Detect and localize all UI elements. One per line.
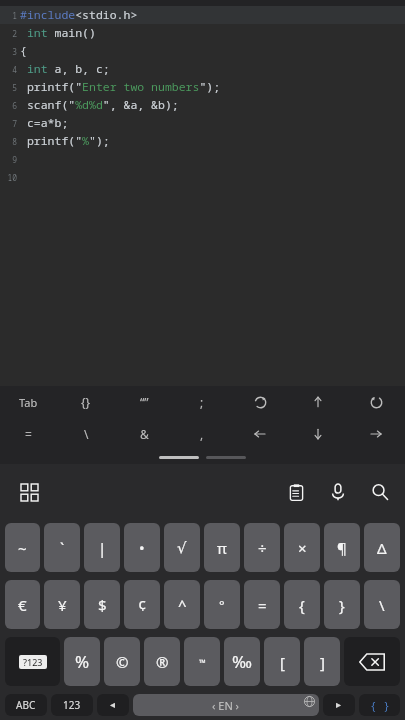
staticText: 9 bbox=[0, 154, 17, 165]
button[interactable]: Clipboard bbox=[281, 477, 311, 507]
button[interactable]: Backspace bbox=[344, 637, 400, 686]
button[interactable]: ¥ bbox=[44, 580, 80, 629]
button[interactable]: π bbox=[204, 523, 240, 572]
staticText: { } bbox=[370, 698, 390, 713]
staticText: printf("%"); bbox=[20, 133, 110, 149]
staticText: ~ bbox=[18, 538, 27, 558]
button[interactable]: = bbox=[0, 418, 57, 450]
staticText: Δ bbox=[377, 538, 387, 558]
button[interactable]: | bbox=[84, 523, 120, 572]
staticText: ▸ bbox=[336, 699, 342, 711]
staticText: , bbox=[200, 426, 204, 442]
staticText: { bbox=[299, 595, 305, 615]
button[interactable]: × bbox=[284, 523, 320, 572]
staticText: ‹ EN › bbox=[212, 698, 240, 713]
button[interactable]: € bbox=[5, 580, 40, 629]
button[interactable]: { bbox=[284, 580, 320, 629]
staticText: ` bbox=[60, 538, 65, 558]
button[interactable]: ; bbox=[173, 386, 231, 418]
staticText: scanf("%d%d", &a, &b); bbox=[20, 97, 179, 113]
button[interactable]: left bbox=[231, 418, 289, 450]
button[interactable]: Tab bbox=[0, 386, 57, 418]
button[interactable]: redo bbox=[347, 386, 405, 418]
button[interactable]: ° bbox=[204, 580, 240, 629]
button[interactable]: } bbox=[324, 580, 360, 629]
staticText: ◂ bbox=[110, 699, 116, 711]
button[interactable]: Keyboard modes bbox=[14, 477, 44, 507]
button[interactable]: {} bbox=[57, 386, 115, 418]
staticText: int main() bbox=[20, 25, 96, 41]
button[interactable]: ‹ EN › bbox=[133, 694, 319, 716]
button[interactable]: Δ bbox=[364, 523, 400, 572]
staticText: √ bbox=[177, 539, 187, 556]
staticText: \ bbox=[379, 595, 385, 615]
button[interactable]: ™ bbox=[184, 637, 220, 686]
staticText: ¶ bbox=[337, 538, 347, 558]
staticText: 3 bbox=[0, 46, 17, 57]
button[interactable]: 123 bbox=[51, 694, 93, 716]
button[interactable]: ~ bbox=[5, 523, 40, 572]
staticText: #include<stdio.h> bbox=[20, 7, 138, 23]
staticText: | bbox=[98, 538, 107, 558]
staticText: { bbox=[20, 43, 27, 59]
button[interactable]: ▸ bbox=[323, 694, 355, 716]
staticText: π bbox=[217, 538, 227, 558]
staticText: = bbox=[258, 595, 267, 615]
button[interactable]: ¢ bbox=[124, 580, 160, 629]
staticText: int a, b, c; bbox=[20, 61, 110, 77]
staticText: © bbox=[116, 652, 129, 672]
button[interactable]: “” bbox=[115, 386, 173, 418]
staticText: ] bbox=[320, 652, 325, 672]
button[interactable]: ABC bbox=[5, 694, 47, 716]
button[interactable]: \ bbox=[364, 580, 400, 629]
staticText: ^ bbox=[178, 595, 187, 615]
staticText: ABC bbox=[16, 698, 36, 712]
button[interactable]: up bbox=[289, 386, 347, 418]
staticText: = bbox=[25, 426, 32, 442]
button[interactable]: [ bbox=[264, 637, 300, 686]
button[interactable]: ` bbox=[44, 523, 80, 572]
button[interactable]: % bbox=[64, 637, 100, 686]
button[interactable]: { } bbox=[359, 694, 400, 716]
staticText: $ bbox=[98, 595, 107, 615]
button[interactable]: down bbox=[289, 418, 347, 450]
button[interactable]: ® bbox=[144, 637, 180, 686]
staticText: ; bbox=[200, 394, 204, 410]
button[interactable]: \ bbox=[57, 418, 115, 450]
button[interactable]: • bbox=[124, 523, 160, 572]
button[interactable]: ] bbox=[304, 637, 340, 686]
staticText: × bbox=[298, 538, 307, 558]
staticText: Tab bbox=[19, 395, 38, 410]
staticText: 123 bbox=[63, 698, 81, 712]
button[interactable]: ^ bbox=[164, 580, 200, 629]
button[interactable]: ◂ bbox=[97, 694, 129, 716]
staticText: ¢ bbox=[138, 595, 147, 615]
staticText: % bbox=[75, 650, 90, 673]
staticText: ?123 bbox=[23, 656, 43, 668]
button[interactable]: & bbox=[115, 418, 173, 450]
button[interactable]: right bbox=[347, 418, 405, 450]
button[interactable]: Voice input bbox=[323, 477, 353, 507]
staticText: 2 bbox=[0, 28, 17, 39]
staticText: 1 bbox=[0, 10, 17, 21]
staticText: 6 bbox=[0, 100, 17, 111]
staticText: printf("Enter two numbers"); bbox=[20, 79, 221, 95]
staticText: {} bbox=[81, 394, 91, 410]
button[interactable]: = bbox=[244, 580, 280, 629]
button[interactable]: Search bbox=[365, 477, 395, 507]
staticText: c=a*b; bbox=[20, 115, 69, 131]
button[interactable]: © bbox=[104, 637, 140, 686]
button[interactable]: ¶ bbox=[324, 523, 360, 572]
staticText: 8 bbox=[0, 136, 17, 147]
button[interactable]: ‰ bbox=[224, 637, 260, 686]
button[interactable]: ÷ bbox=[244, 523, 280, 572]
button[interactable]: undo bbox=[231, 386, 289, 418]
button[interactable]: √ bbox=[164, 523, 200, 572]
button[interactable]: ?123 bbox=[5, 637, 60, 686]
staticText: ÷ bbox=[258, 538, 267, 558]
button[interactable]: , bbox=[173, 418, 231, 450]
staticText: \ bbox=[84, 426, 89, 442]
button[interactable]: $ bbox=[84, 580, 120, 629]
staticText: } bbox=[339, 595, 345, 615]
staticText: 10 bbox=[0, 172, 17, 183]
